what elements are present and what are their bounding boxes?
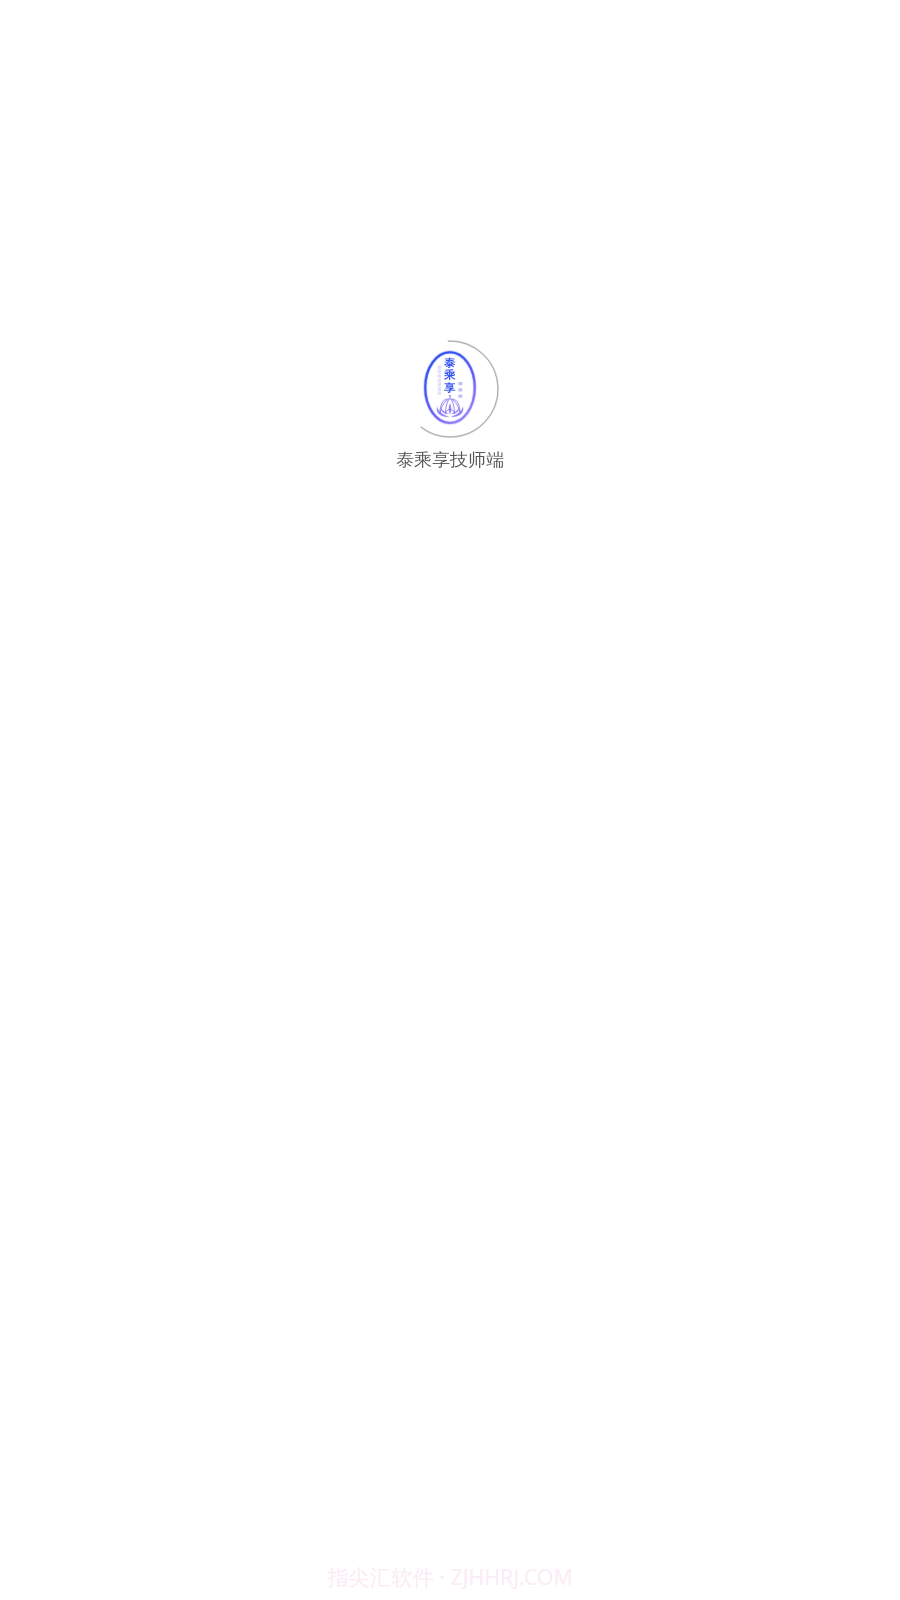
staticText: 享: [444, 381, 456, 395]
staticText: 泰乘享技师端: [396, 449, 504, 472]
staticText: 乘: [444, 368, 456, 382]
staticText: 指尖汇软件 · ZJHHRJ.COM: [327, 1562, 573, 1591]
staticText: 泰: [444, 356, 456, 370]
